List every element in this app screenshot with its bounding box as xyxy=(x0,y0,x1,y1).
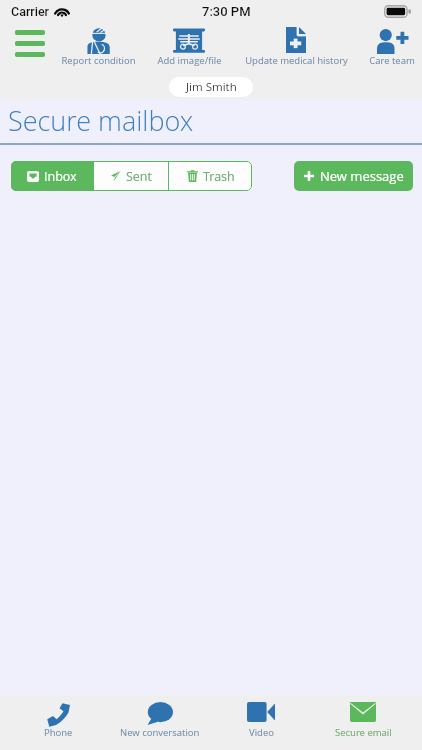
staticText: Secure email xyxy=(335,726,392,739)
button[interactable]: Report condition xyxy=(48,24,148,67)
staticText: Phone xyxy=(44,726,73,739)
staticText: 7:30 PM xyxy=(202,4,251,19)
button[interactable]: Add image/file xyxy=(144,24,234,67)
button[interactable]: Menu xyxy=(5,22,55,64)
button[interactable]: New conversation xyxy=(109,695,210,750)
staticText: Care team xyxy=(369,54,415,67)
staticText: New conversation xyxy=(120,726,200,739)
staticText: Trash xyxy=(203,168,235,185)
button[interactable]: Care team xyxy=(363,24,421,67)
staticText: Add image/file xyxy=(157,54,222,67)
button[interactable]: Trash xyxy=(169,161,252,191)
staticText: Video xyxy=(249,726,274,739)
button[interactable]: Secure email xyxy=(312,695,414,750)
staticText: Inbox xyxy=(44,168,77,185)
staticText: Jim Smith xyxy=(186,79,237,95)
button[interactable]: Inbox xyxy=(11,161,93,191)
staticText: Secure mailbox xyxy=(8,102,194,139)
button[interactable]: Jim Smith xyxy=(169,77,253,97)
button[interactable]: Update medical history xyxy=(241,24,351,67)
button[interactable]: Phone xyxy=(8,695,109,750)
staticText: Sent xyxy=(126,168,152,185)
staticText: Report condition xyxy=(61,54,136,67)
button[interactable]: Sent xyxy=(94,161,168,191)
staticText: Carrier xyxy=(11,4,50,19)
staticText: Update medical history xyxy=(245,54,348,67)
staticText: New message xyxy=(320,167,404,185)
button[interactable]: Video xyxy=(210,695,312,750)
button[interactable]: New message xyxy=(294,161,413,191)
